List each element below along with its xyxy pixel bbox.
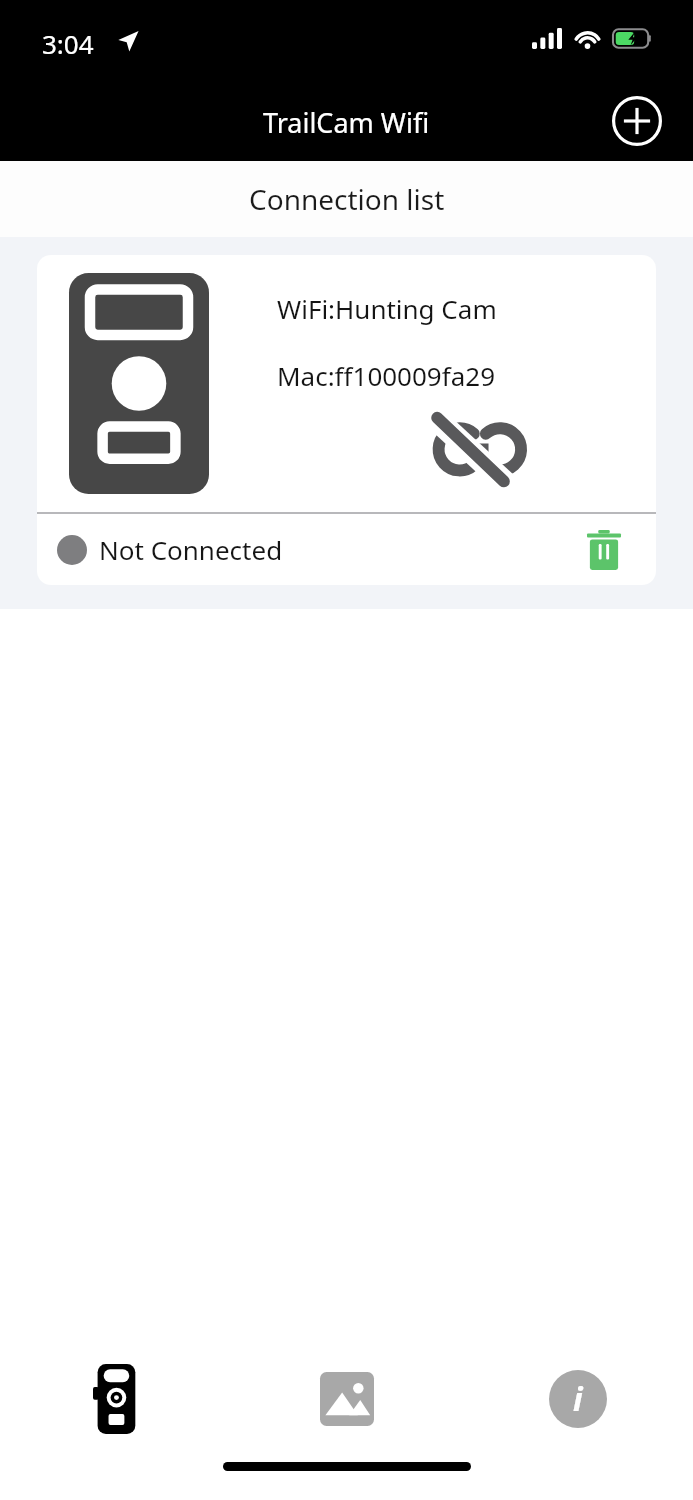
button[interactable]: Delete (576, 522, 632, 578)
staticText: 3:04 (42, 26, 94, 61)
button[interactable]: Cameras (0, 1344, 231, 1454)
button[interactable]: WiFi:Hunting Cam (37, 255, 656, 585)
staticText: Connection list (249, 180, 445, 218)
staticText: i (573, 1377, 583, 1421)
button[interactable]: Gallery (231, 1344, 462, 1454)
button[interactable]: Add connection (609, 93, 665, 149)
button[interactable]: Not connected (429, 414, 525, 482)
staticText: Mac:ff100009fa29 (277, 358, 496, 393)
staticText: WiFi:Hunting Cam (277, 291, 497, 326)
staticText: Not Connected (99, 532, 283, 567)
button[interactable]: Info (462, 1344, 693, 1454)
staticText: TrailCam Wifi (263, 104, 430, 141)
